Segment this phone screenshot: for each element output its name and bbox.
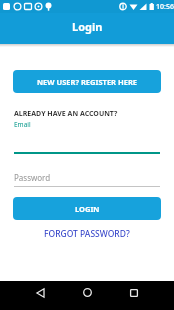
button[interactable]: [117, 281, 151, 304]
staticText: Password: [14, 172, 51, 183]
button[interactable]: NEW USER? REGISTER HERE: [13, 70, 161, 93]
staticText: 10:56: [156, 2, 174, 12]
button[interactable]: [70, 281, 104, 304]
button[interactable]: FORGOT PASSWORD?: [0, 228, 174, 240]
staticText: FORGOT PASSWORD?: [44, 228, 130, 240]
button[interactable]: [23, 281, 57, 304]
staticText: Email: [14, 120, 31, 129]
staticText: NEW USER? REGISTER HERE: [37, 77, 138, 87]
button[interactable]: LOGIN: [13, 197, 161, 220]
staticText: Login: [72, 19, 103, 34]
staticText: LOGIN: [75, 204, 100, 214]
staticText: ALREADY HAVE AN ACCOUNT?: [14, 109, 118, 119]
